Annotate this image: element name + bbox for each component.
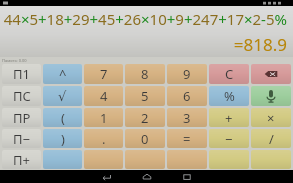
- button[interactable]: П1: [2, 64, 41, 84]
- button[interactable]: 3: [167, 108, 207, 127]
- staticText: ×: [267, 109, 275, 127]
- staticText: 5: [141, 87, 149, 105]
- staticText: 8: [141, 65, 149, 83]
- button[interactable]: Back: [99, 170, 115, 183]
- staticText: (: [61, 109, 65, 127]
- button[interactable]: √: [43, 86, 82, 106]
- button[interactable]: 8: [125, 64, 165, 84]
- button[interactable]: [125, 150, 165, 169]
- staticText: 3: [183, 109, 191, 127]
- staticText: 7: [100, 65, 108, 83]
- staticText: /: [269, 130, 274, 148]
- staticText: %: [224, 87, 235, 105]
- button[interactable]: +: [209, 108, 249, 127]
- button[interactable]: 4: [84, 86, 123, 106]
- staticText: 44×5+18+29+45+26×10+9+247+17×2-5%: [3, 9, 287, 29]
- button[interactable]: Recents: [179, 170, 195, 183]
- button[interactable]: Home: [139, 170, 155, 183]
- button[interactable]: 44×5+18+29+45+26×10+9+247+17×2-5%: [0, 6, 293, 57]
- staticText: 4: [100, 87, 108, 105]
- staticText: √: [58, 89, 67, 104]
- staticText: ^: [59, 65, 67, 83]
- button[interactable]: [43, 150, 82, 169]
- button[interactable]: 2: [125, 108, 165, 127]
- staticText: 0: [141, 130, 149, 148]
- button[interactable]: 7: [84, 64, 123, 84]
- staticText: =818.9: [233, 33, 287, 56]
- button[interactable]: 5: [125, 86, 165, 106]
- staticText: 9: [183, 65, 191, 83]
- staticText: 6: [183, 87, 191, 105]
- button[interactable]: 9: [167, 64, 207, 84]
- staticText: П−: [13, 130, 30, 148]
- button[interactable]: ПР: [2, 108, 41, 127]
- button[interactable]: П−: [2, 129, 41, 148]
- button[interactable]: Voice input: [251, 86, 291, 106]
- button[interactable]: C: [209, 64, 249, 84]
- button[interactable]: П+: [2, 150, 41, 169]
- staticText: +: [225, 109, 233, 127]
- button[interactable]: .: [84, 129, 123, 148]
- button[interactable]: 1: [84, 108, 123, 127]
- button[interactable]: Backspace: [251, 64, 291, 84]
- button[interactable]: [167, 150, 207, 169]
- button[interactable]: %: [209, 86, 249, 106]
- staticText: −: [225, 130, 233, 148]
- staticText: Память: 0.00: [2, 58, 27, 63]
- button[interactable]: =: [167, 129, 207, 148]
- staticText: .: [102, 130, 106, 148]
- staticText: ): [61, 130, 65, 148]
- staticText: П1: [13, 65, 30, 83]
- button[interactable]: 6: [167, 86, 207, 106]
- staticText: П+: [13, 151, 30, 169]
- staticText: =: [183, 130, 191, 148]
- staticText: C: [225, 65, 234, 83]
- button[interactable]: 0: [125, 129, 165, 148]
- staticText: 2: [141, 109, 149, 127]
- button[interactable]: [209, 150, 249, 169]
- staticText: ПР: [13, 109, 31, 127]
- button[interactable]: ПС: [2, 86, 41, 106]
- button[interactable]: (: [43, 108, 82, 127]
- staticText: ПС: [13, 87, 31, 105]
- button[interactable]: ^: [43, 64, 82, 84]
- staticText: 1: [100, 109, 108, 127]
- button[interactable]: [84, 150, 123, 169]
- button[interactable]: ×: [251, 108, 291, 127]
- button[interactable]: −: [209, 129, 249, 148]
- button[interactable]: /: [251, 129, 291, 148]
- button[interactable]: ): [43, 129, 82, 148]
- button[interactable]: [251, 150, 291, 169]
